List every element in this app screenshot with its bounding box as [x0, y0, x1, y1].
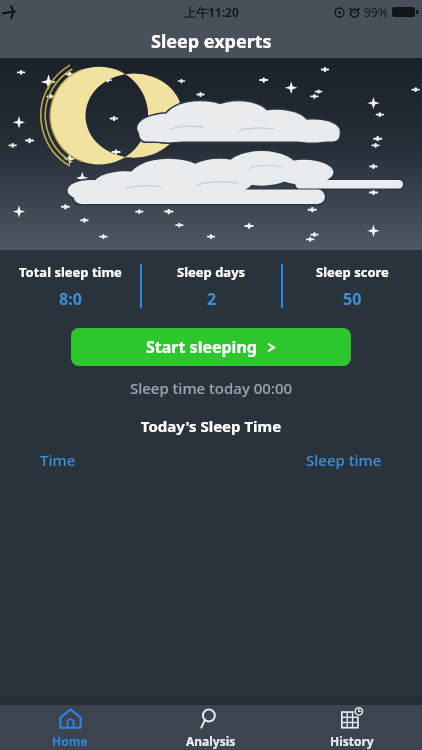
- staticText: Sleep time today 00:00: [0, 378, 422, 398]
- staticText: Total sleep time: [19, 263, 122, 281]
- staticText: Time: [40, 450, 76, 470]
- button[interactable]: Total sleep time: [0, 263, 140, 310]
- button[interactable]: Start sleeping: [71, 328, 351, 366]
- staticText: 上午11:20: [184, 4, 239, 20]
- staticText: 50: [343, 288, 362, 310]
- button[interactable]: Sleep days: [142, 263, 281, 310]
- staticText: 99%: [364, 4, 388, 20]
- button[interactable]: History: [281, 707, 422, 749]
- button[interactable]: Analysis: [140, 707, 281, 749]
- staticText: Sleep score: [316, 263, 389, 281]
- staticText: Analysis: [186, 733, 236, 749]
- staticText: Sleep days: [177, 263, 246, 281]
- staticText: Sleep time: [306, 450, 382, 470]
- staticText: Start sleeping: [146, 336, 257, 358]
- staticText: Home: [52, 733, 88, 749]
- staticText: History: [330, 733, 374, 749]
- staticText: 8:0: [59, 288, 82, 310]
- button[interactable]: Sleep score: [283, 263, 422, 310]
- staticText: Sleep experts: [151, 29, 272, 54]
- button[interactable]: Home: [0, 707, 140, 749]
- staticText: 2: [207, 288, 217, 310]
- staticText: Today's Sleep Time: [0, 416, 422, 436]
